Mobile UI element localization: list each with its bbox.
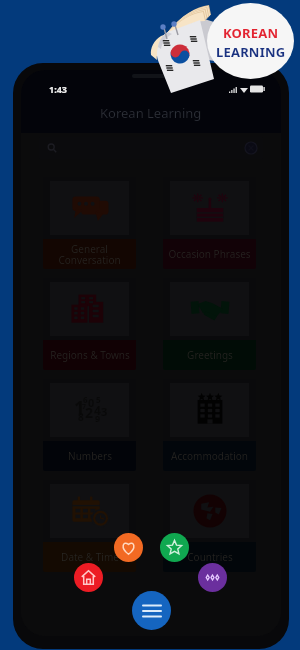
staticText: Numbers <box>68 449 112 463</box>
button[interactable]: Greetings <box>163 278 256 370</box>
staticText: KOREAN <box>223 24 279 42</box>
staticText: LEARNING <box>216 43 286 61</box>
staticText: 0 <box>88 395 95 410</box>
staticText: Countries <box>187 550 233 564</box>
other: Voice search <box>245 142 257 154</box>
button[interactable]: Countries <box>163 480 256 572</box>
button[interactable]: General Conversation <box>43 177 136 269</box>
staticText: Accommodation <box>171 449 248 463</box>
button[interactable]: Occasion Phrases <box>163 177 256 269</box>
staticText: Occasion Phrases <box>168 247 251 261</box>
staticText: 4 <box>94 402 101 418</box>
staticText: 5 <box>96 394 101 405</box>
button[interactable]: Regions & Towns <box>43 278 136 370</box>
other: Search <box>47 143 57 153</box>
staticText: 1 <box>74 395 85 421</box>
staticText: 9 <box>95 412 101 424</box>
button[interactable]: Favourites <box>114 533 143 562</box>
button[interactable]: Home <box>74 563 103 592</box>
staticText: 6 <box>83 394 88 405</box>
button[interactable]: More <box>198 563 227 592</box>
button[interactable]: Date & Time <box>43 480 136 572</box>
button[interactable]: 1 <box>43 379 136 471</box>
staticText: 2 <box>85 403 94 422</box>
button[interactable]: Accommodation <box>163 379 256 471</box>
staticText: Greetings <box>187 348 233 362</box>
staticText: Date & Time <box>61 550 119 564</box>
staticText: 8 <box>78 410 84 424</box>
button[interactable]: Saved <box>160 533 189 562</box>
button[interactable]: Menu <box>132 591 171 630</box>
staticText: Regions & Towns <box>50 348 130 362</box>
staticText: General Conversation <box>58 242 121 267</box>
staticText: 1:43 <box>49 83 67 95</box>
staticText: Korean Learning <box>100 104 202 122</box>
